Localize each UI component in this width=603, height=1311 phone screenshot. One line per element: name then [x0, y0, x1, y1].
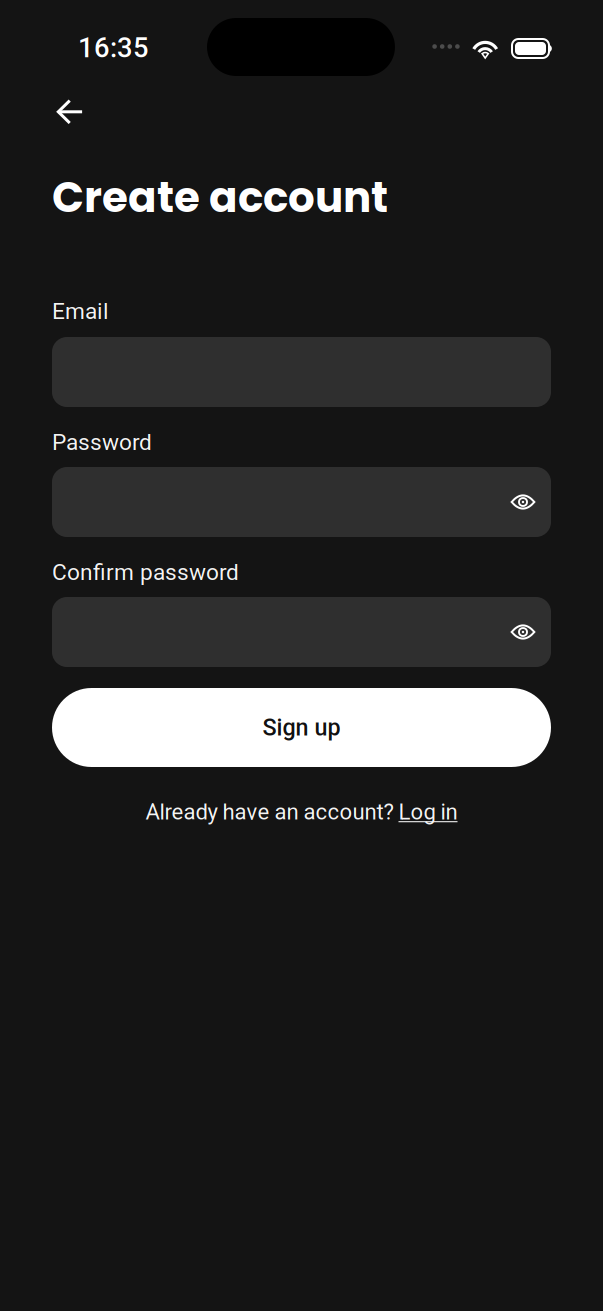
staticText: Already have an account?	[145, 799, 398, 825]
staticText: Email	[52, 298, 109, 325]
button[interactable]: Show confirm password	[495, 597, 551, 667]
staticText: Log in	[398, 799, 457, 825]
button[interactable]: Sign up	[52, 688, 551, 767]
staticText: Sign up	[262, 714, 340, 741]
button[interactable]: Back	[41, 86, 99, 138]
staticText: Create account	[52, 168, 388, 227]
staticText: Password	[52, 429, 152, 456]
staticText: 16:35	[78, 32, 149, 64]
staticText: Confirm password	[52, 559, 239, 586]
button[interactable]: Show password	[495, 467, 551, 537]
button[interactable]: Log in	[398, 799, 457, 825]
